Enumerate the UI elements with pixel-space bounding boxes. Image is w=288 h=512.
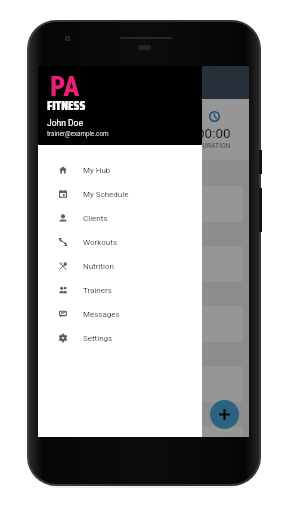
staticText: My Schedule <box>83 190 129 199</box>
staticText: DURATION <box>198 142 231 150</box>
staticText: Nutrition <box>83 262 114 271</box>
button[interactable]: Add <box>210 400 239 429</box>
staticText: trainer@example.com <box>47 130 109 137</box>
staticText: 00:00 <box>197 125 231 141</box>
staticText: Workouts <box>83 238 118 247</box>
button[interactable]: Settings <box>38 326 202 350</box>
button[interactable]: Workouts <box>38 230 202 254</box>
staticText: Trainers <box>83 286 112 295</box>
button[interactable] <box>44 246 243 282</box>
staticText: Clients <box>83 214 108 223</box>
staticText: FITNESS <box>47 95 86 115</box>
button[interactable] <box>38 66 249 437</box>
button[interactable] <box>44 186 243 222</box>
button[interactable]: Clients <box>38 206 202 230</box>
staticText: DURATION <box>57 142 90 150</box>
button[interactable]: Trainers <box>38 278 202 302</box>
staticText: My Hub <box>83 166 111 175</box>
button[interactable]: My Schedule <box>38 182 202 206</box>
button[interactable] <box>44 426 243 437</box>
staticText: John Doe <box>47 118 83 128</box>
staticText: Messages <box>83 310 120 319</box>
staticText: 00:00 <box>57 125 91 141</box>
button[interactable] <box>44 306 243 342</box>
button[interactable]: My Hub <box>38 158 202 182</box>
button[interactable] <box>44 366 243 402</box>
staticText: DURATION <box>128 142 161 150</box>
button[interactable]: Nutrition <box>38 254 202 278</box>
button[interactable]: Messages <box>38 302 202 326</box>
staticText: Settings <box>83 334 113 343</box>
staticText: PA <box>50 71 80 103</box>
